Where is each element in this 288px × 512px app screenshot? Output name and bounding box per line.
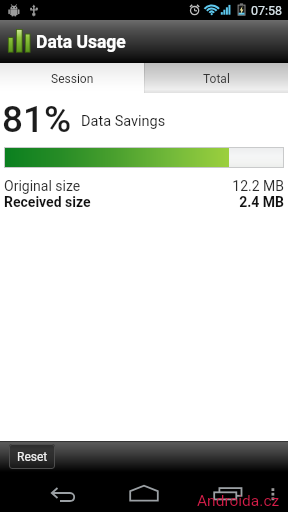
button[interactable]: Recent apps — [200, 472, 252, 512]
staticText: Reset — [17, 450, 48, 464]
staticText: Session — [51, 72, 94, 86]
button[interactable]: Back — [38, 472, 90, 512]
staticText: Data Savings — [81, 113, 166, 130]
button[interactable]: Home — [119, 472, 171, 512]
staticText: Data Usage — [36, 32, 126, 53]
staticText: 2.4 MB — [91, 194, 284, 210]
button[interactable]: Total — [144, 63, 288, 93]
button[interactable]: More options — [264, 472, 282, 512]
staticText: Total — [203, 72, 230, 86]
staticText: 07:58 — [251, 3, 283, 18]
staticText: Received size — [4, 194, 91, 210]
button[interactable]: Session — [0, 63, 144, 93]
staticText: 12.2 MB — [81, 178, 284, 194]
button[interactable]: Reset — [9, 444, 55, 469]
staticText: Original size — [4, 178, 81, 194]
staticText: 81% — [2, 98, 72, 141]
staticText: Androida.cz — [197, 492, 280, 510]
